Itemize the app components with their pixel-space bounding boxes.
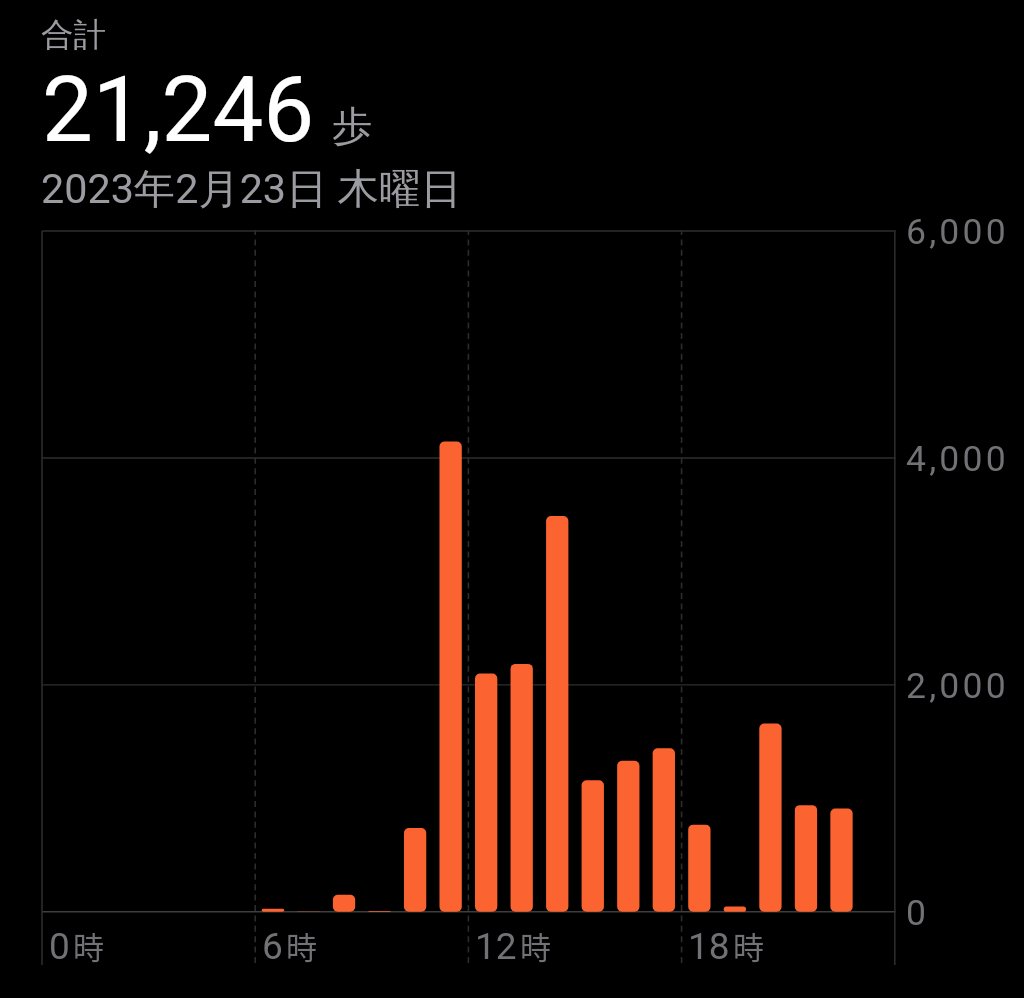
staticText: 歩 bbox=[332, 101, 373, 152]
staticText: 0 bbox=[49, 925, 70, 968]
staticText: 12 bbox=[475, 925, 517, 968]
staticText: 時 bbox=[733, 923, 764, 968]
staticText: 2,000 bbox=[906, 665, 1009, 707]
staticText: 6,000 bbox=[906, 211, 1009, 253]
button[interactable]: Hourly step count chart bbox=[42, 231, 895, 965]
staticText: 2023年2月23日 木曜日 bbox=[41, 163, 462, 215]
staticText: 18 bbox=[688, 925, 730, 968]
staticText: 21,246 bbox=[42, 57, 315, 163]
staticText: 合計 bbox=[41, 15, 106, 56]
staticText: 4,000 bbox=[906, 438, 1009, 480]
staticText: 時 bbox=[520, 923, 551, 968]
staticText: 時 bbox=[286, 923, 317, 968]
staticText: 6 bbox=[262, 925, 283, 968]
staticText: 時 bbox=[73, 923, 104, 968]
staticText: 0 bbox=[906, 892, 930, 934]
